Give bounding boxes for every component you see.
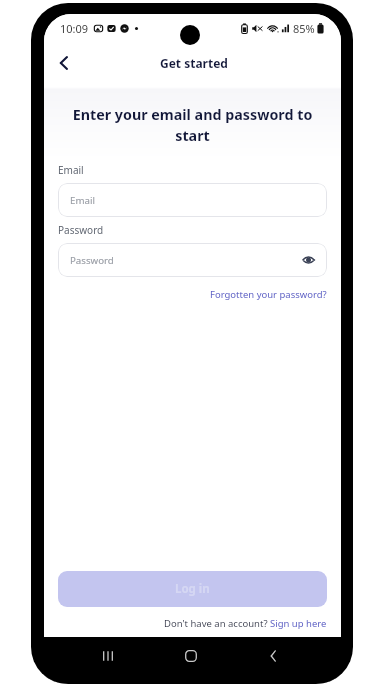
button[interactable]: Back [47,46,81,80]
staticText: 85% [293,21,315,36]
button[interactable]: Show password [297,249,319,271]
staticText: Password [58,223,104,237]
staticText: Log in [175,581,210,597]
staticText: Get started [160,55,228,71]
button[interactable]: Email [58,183,327,217]
staticText: Enter your email and password to start [66,105,319,146]
button[interactable]: Sign up here [270,617,327,630]
staticText: Email [58,163,84,177]
staticText: Email [70,194,95,207]
staticText: Don't have an account? [164,617,270,630]
button[interactable]: Back [254,636,294,676]
button[interactable]: Password [58,243,327,277]
button[interactable]: Recents [88,636,128,676]
button[interactable]: Log in [58,571,327,607]
staticText: Password [70,254,114,267]
button[interactable]: Home [171,636,211,676]
button[interactable]: Forgotten your password? [210,288,327,301]
staticText: 10:09 [60,21,89,36]
